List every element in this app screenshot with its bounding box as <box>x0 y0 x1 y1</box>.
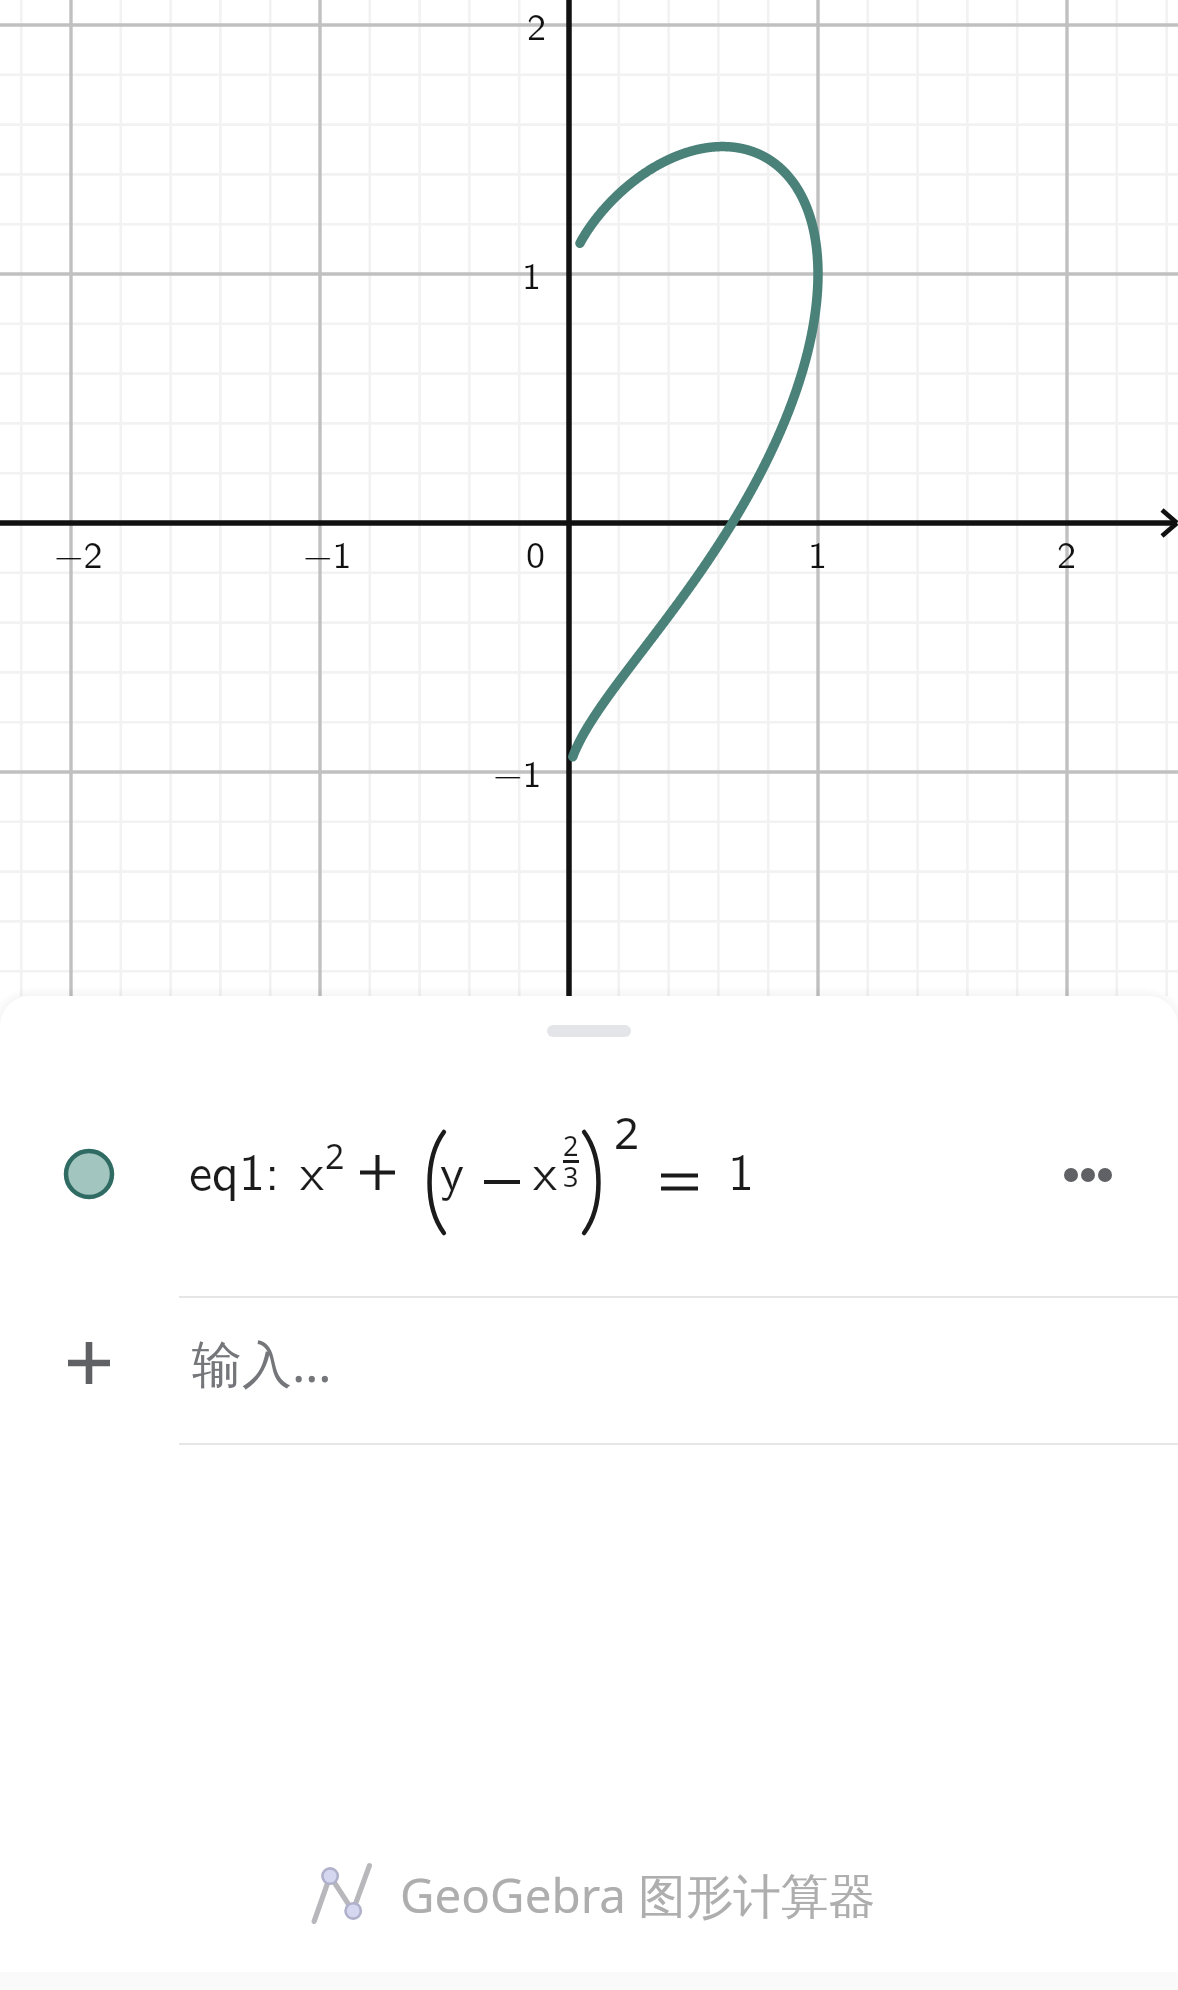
staticText: y <box>440 1130 464 1206</box>
staticText: −1 <box>493 743 542 799</box>
staticText: 1 <box>808 524 828 580</box>
staticText: 0 <box>526 524 546 580</box>
button[interactable]: More options <box>1024 1111 1152 1239</box>
button[interactable]: eq1: x² + (y − x^(2/3))² = 1 <box>0 1056 1178 1296</box>
other: Add input <box>68 1342 110 1384</box>
staticText: 2 <box>614 1102 640 1162</box>
staticText: 3 <box>563 1158 579 1195</box>
staticText: 1 <box>522 245 542 301</box>
staticText: 2 <box>325 1133 345 1179</box>
staticText: GeoGebra 图形计算器 <box>400 1862 876 1927</box>
staticText: −2 <box>54 524 103 580</box>
staticText: 输入… <box>192 1329 332 1397</box>
staticText: eq1: <box>189 1130 280 1206</box>
staticText: 2 <box>563 1127 579 1164</box>
staticText: x <box>300 1130 324 1206</box>
staticText: 1 <box>728 1130 755 1206</box>
staticText: 2 <box>1057 524 1077 580</box>
staticText: 2 <box>527 0 547 52</box>
staticText: x <box>533 1130 557 1206</box>
button[interactable]: Input row <box>0 1298 1178 1443</box>
staticText: −1 <box>303 524 352 580</box>
